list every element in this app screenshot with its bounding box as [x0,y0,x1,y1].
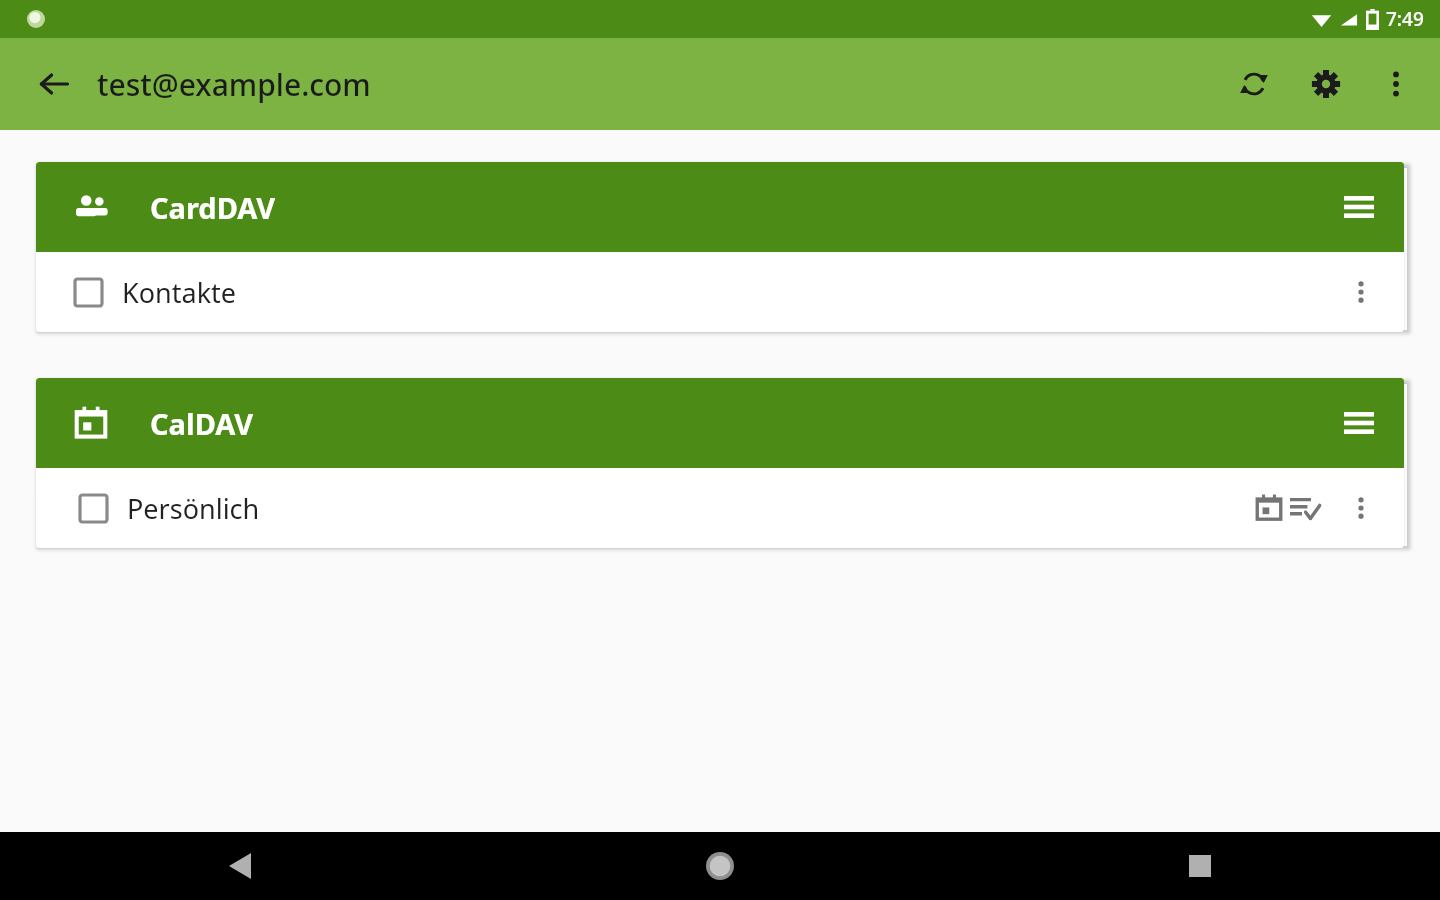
button[interactable]: Show collections menu [1328,176,1390,238]
button[interactable]: Toggle Persönlich [67,482,119,534]
staticText: Persönlich [127,490,260,527]
button[interactable]: Back [0,832,480,900]
staticText: CardDAV [150,188,276,227]
button[interactable]: Settings [1294,52,1358,116]
button[interactable]: More options for Kontakte [1332,263,1390,321]
button[interactable]: CalDAV [36,378,1404,468]
button[interactable]: Home [480,832,960,900]
button[interactable]: More options [1364,52,1428,116]
button[interactable]: More options for Persönlich [1332,479,1390,537]
staticText: CalDAV [150,404,254,443]
staticText: Kontakte [122,274,237,311]
button[interactable]: Toggle Persönlich [36,468,1404,548]
button[interactable]: Sync now [1222,52,1286,116]
staticText: 7:49 [1386,6,1424,32]
button[interactable]: Back [22,52,86,116]
button[interactable]: Recent apps [960,832,1440,900]
button[interactable]: Toggle Kontakte [36,252,1404,332]
staticText: test@example.com [97,64,371,105]
button[interactable]: CardDAV [36,162,1404,252]
button[interactable]: Show collections menu [1328,392,1390,454]
button[interactable]: Toggle Kontakte [62,266,114,318]
